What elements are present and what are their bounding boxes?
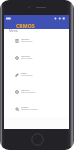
- button[interactable]: Clientes: [4, 66, 69, 83]
- staticText: Clientes: [21, 72, 27, 74]
- staticText: Menú: [9, 29, 18, 32]
- staticText: Propuestas: [21, 38, 30, 40]
- button[interactable]: Propuestas: [4, 32, 69, 49]
- staticText: Gestión comercial: [21, 58, 33, 60]
- staticText: Gestión de ventas: [21, 41, 33, 43]
- staticText: Utilidades: [21, 106, 29, 108]
- staticText: Gestión de publicación: [21, 92, 36, 94]
- staticText: Publicación: [21, 89, 30, 91]
- staticText: Operaciones: [21, 55, 31, 57]
- button[interactable]: Utilidades: [4, 100, 69, 117]
- button[interactable]: Home: [31, 133, 44, 146]
- staticText: Utilidades para la empresa: [21, 109, 38, 111]
- button[interactable]: Operaciones: [4, 49, 69, 66]
- staticText: Listado de clientes: [21, 75, 33, 77]
- staticText: CRMOS: [16, 22, 35, 29]
- button[interactable]: Publicación: [4, 83, 69, 100]
